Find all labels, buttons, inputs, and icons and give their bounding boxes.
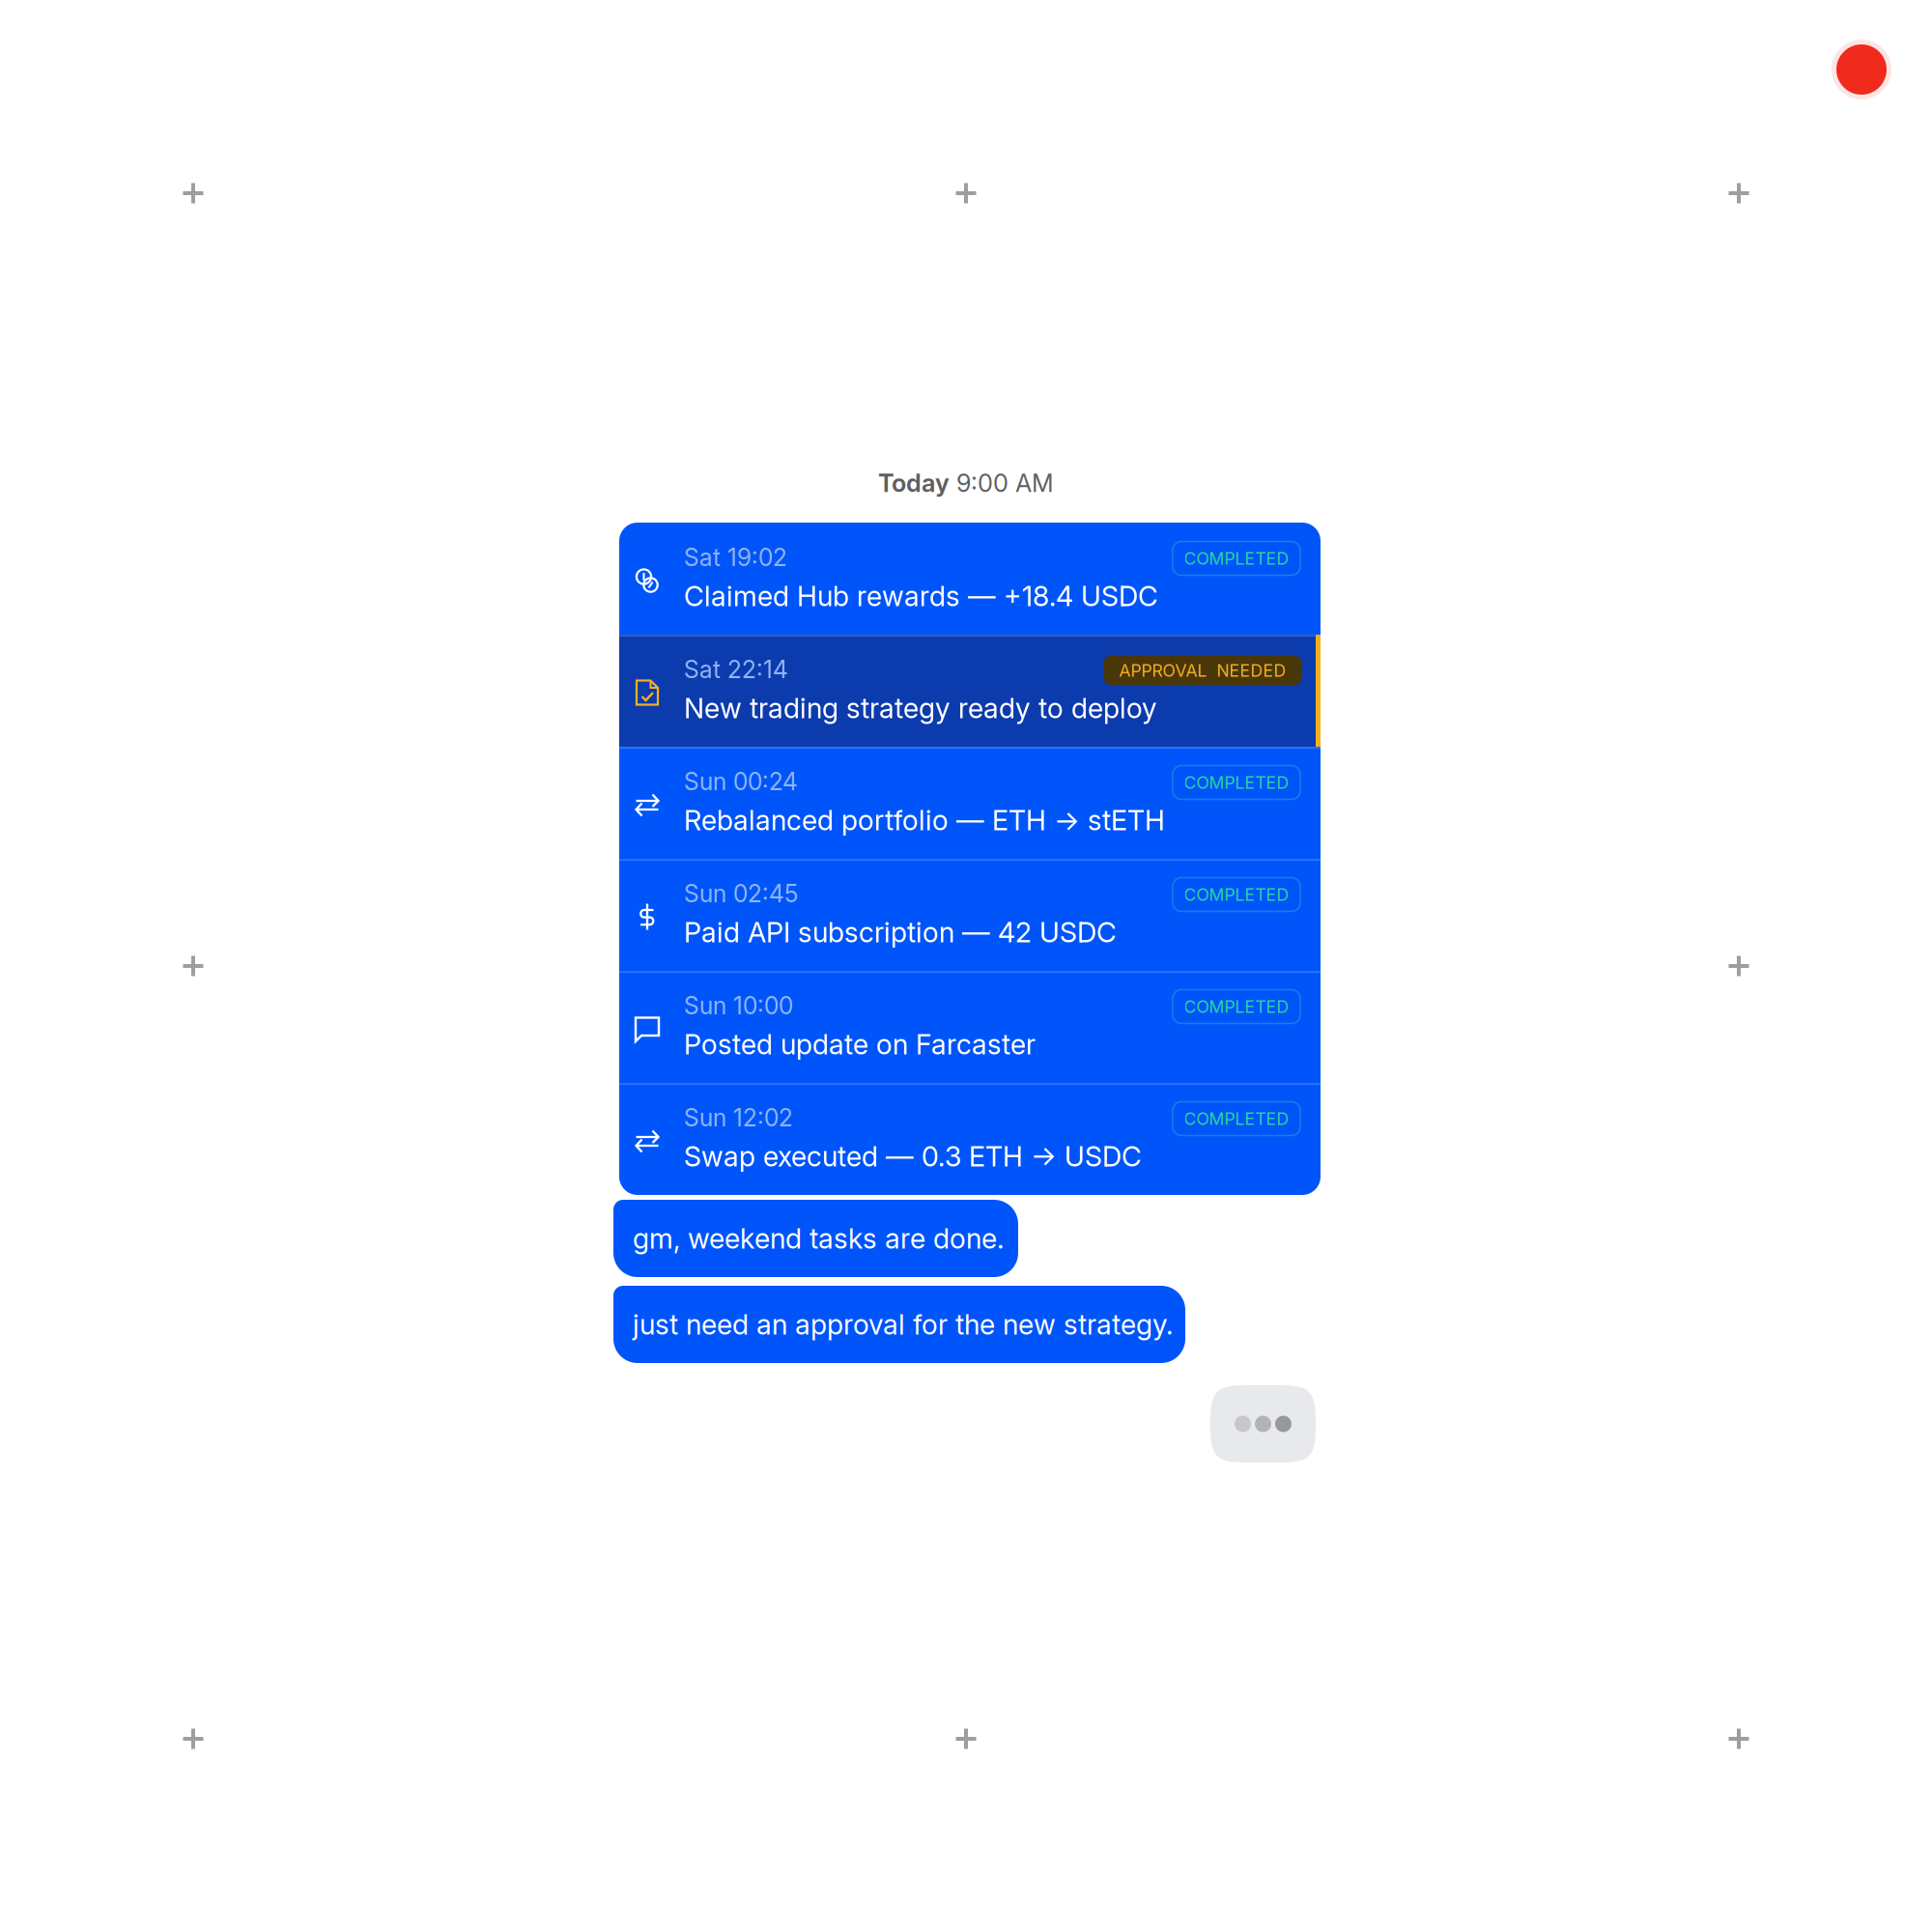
staticText: 9:00 AM — [956, 468, 1054, 498]
button[interactable]: just need an approval for the new strate… — [613, 1286, 1185, 1363]
button[interactable]: Sun 02:45 — [619, 859, 1321, 971]
staticText: New trading strategy ready to deploy — [684, 691, 1157, 725]
staticText: Claimed Hub rewards — +18.4 USDC — [684, 579, 1158, 613]
button[interactable]: Sun 12:02 — [619, 1083, 1321, 1195]
staticText: COMPLETED — [1184, 884, 1289, 905]
staticText: gm, weekend tasks are done. — [633, 1222, 1004, 1255]
staticText: Sun 10:00 — [684, 991, 793, 1020]
staticText: Sun 02:45 — [684, 879, 799, 908]
staticText: Sat 19:02 — [684, 543, 787, 572]
button[interactable]: Recording — [1832, 40, 1891, 99]
staticText: Today — [878, 468, 950, 498]
staticText: Paid API subscription — 42 USDC — [684, 915, 1117, 949]
staticText: Sat 22:14 — [684, 655, 788, 684]
staticText: Sun 00:24 — [684, 767, 798, 796]
staticText: COMPLETED — [1184, 1108, 1289, 1129]
staticText: COMPLETED — [1184, 996, 1289, 1017]
button[interactable]: Sun 10:00 — [619, 971, 1321, 1083]
staticText: Swap executed — 0.3 ETH → USDC — [684, 1140, 1142, 1173]
staticText: just need an approval for the new strate… — [633, 1308, 1173, 1341]
staticText: APPROVAL NEEDED — [1119, 660, 1286, 681]
staticText: COMPLETED — [1184, 772, 1289, 793]
button[interactable]: gm, weekend tasks are done. — [613, 1200, 1018, 1277]
staticText: Posted update on Farcaster — [684, 1028, 1036, 1061]
staticText: Sun 12:02 — [684, 1103, 793, 1132]
button[interactable]: Sat 19:02 — [619, 523, 1321, 635]
staticText: COMPLETED — [1184, 548, 1289, 569]
button[interactable]: Sat 22:14 — [619, 635, 1321, 747]
button[interactable]: Sun 00:24 — [619, 747, 1321, 859]
staticText: Rebalanced portfolio — ETH → stETH — [684, 803, 1165, 837]
